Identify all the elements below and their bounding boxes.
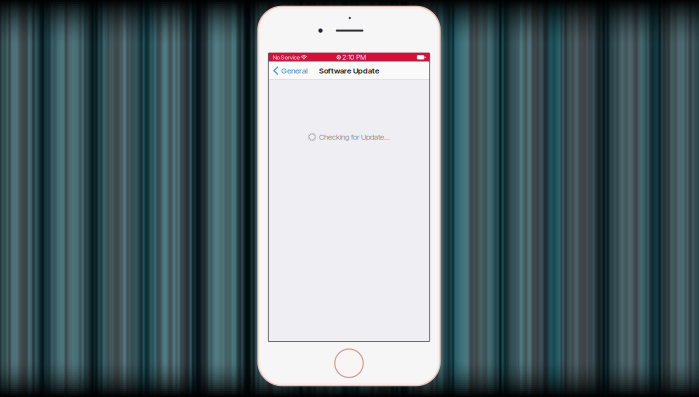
staticText: Software Update: [319, 66, 379, 75]
staticText: 2:10 PM: [342, 53, 366, 61]
staticText: No Service: [273, 54, 300, 61]
button[interactable]: General: [268, 62, 311, 79]
staticText: General: [281, 66, 308, 75]
staticText: Checking for Update...: [319, 132, 390, 142]
